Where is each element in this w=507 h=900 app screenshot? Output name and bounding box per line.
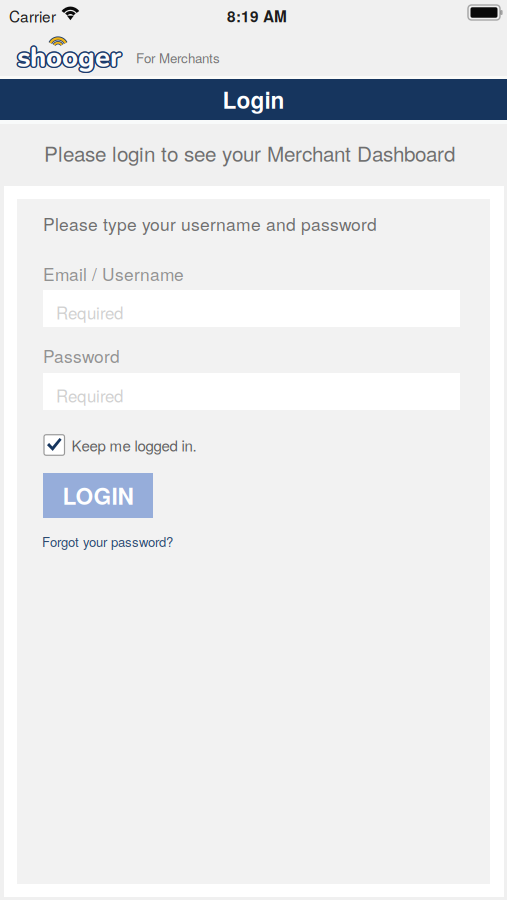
staticText: shooger: [16, 39, 120, 76]
staticText: Required: [56, 383, 123, 407]
staticText: Keep me logged in.: [71, 434, 196, 456]
button[interactable]: Required: [43, 290, 460, 327]
staticText: Password: [43, 343, 120, 368]
staticText: shooger: [16, 40, 120, 77]
staticText: Required: [56, 300, 123, 324]
staticText: shooger: [18, 40, 122, 77]
staticText: Login: [222, 83, 284, 116]
staticText: Forgot your password?: [42, 532, 173, 551]
staticText: shooger: [17, 38, 121, 75]
staticText: Carrier: [9, 5, 56, 27]
button[interactable]: LOGIN: [43, 473, 153, 518]
staticText: shooger: [18, 38, 122, 75]
button[interactable]: Keep me logged in.: [44, 434, 196, 456]
button[interactable]: Required: [43, 373, 460, 410]
staticText: shooger: [17, 39, 121, 76]
staticText: For Merchants: [136, 48, 220, 67]
staticText: shooger: [17, 40, 121, 78]
staticText: LOGIN: [62, 479, 133, 512]
staticText: shooger: [16, 38, 120, 75]
staticText: Email / Username: [43, 261, 184, 286]
staticText: Please login to see your Merchant Dashbo…: [44, 138, 455, 168]
staticText: Please type your username and password: [43, 211, 377, 236]
staticText: shooger: [18, 39, 122, 76]
button[interactable]: Forgot your password?: [42, 532, 173, 551]
staticText: 8:19 AM: [227, 5, 287, 27]
